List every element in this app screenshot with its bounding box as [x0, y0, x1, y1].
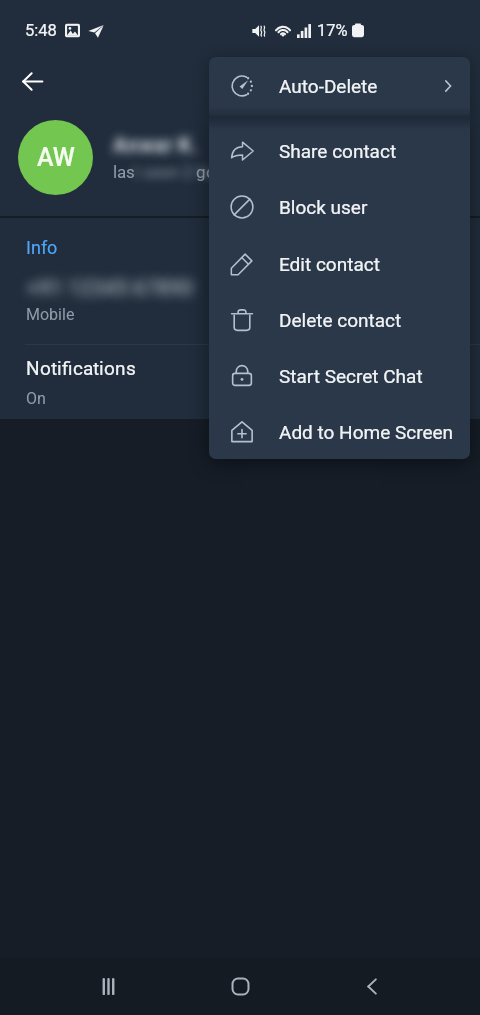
- staticText: Block user: [279, 196, 368, 218]
- staticText: Add to Home Screen: [279, 421, 454, 443]
- button[interactable]: Auto-Delete: [209, 57, 470, 115]
- staticText: Delete contact: [279, 309, 402, 331]
- staticText: Share contact: [279, 140, 397, 162]
- button[interactable]: Add to Home Screen: [209, 404, 470, 459]
- staticText: Start Secret Chat: [279, 365, 423, 387]
- button[interactable]: Delete contact: [209, 292, 470, 348]
- button[interactable]: Edit contact: [209, 235, 470, 292]
- button[interactable]: Home: [216, 962, 264, 1010]
- staticText: Auto-Delete: [279, 75, 378, 97]
- staticText: 17%: [317, 21, 348, 40]
- button[interactable]: Back: [348, 962, 396, 1010]
- button[interactable]: Block user: [209, 179, 470, 235]
- button[interactable]: Recent apps: [84, 962, 132, 1010]
- button[interactable]: Share contact: [209, 123, 470, 179]
- staticText: 5:48: [25, 21, 57, 40]
- button[interactable]: Start Secret Chat: [209, 348, 470, 404]
- staticText: Edit contact: [279, 253, 380, 275]
- button[interactable]: Back: [10, 59, 54, 103]
- button[interactable]: [0, 218, 480, 343]
- staticText: AW: [37, 143, 75, 172]
- button[interactable]: [0, 345, 480, 419]
